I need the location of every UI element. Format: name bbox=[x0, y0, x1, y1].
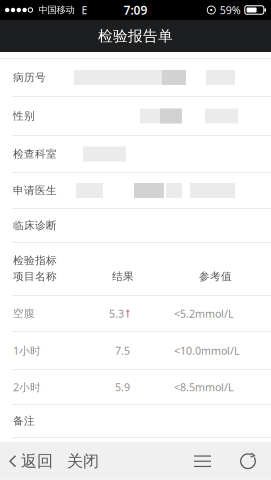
staticText: 项目名称 bbox=[13, 270, 57, 283]
staticText: 空腹 bbox=[13, 307, 35, 320]
button[interactable]: 关闭 bbox=[59, 443, 107, 480]
staticText: 5.9 bbox=[115, 380, 130, 394]
staticText: 申请医生 bbox=[13, 184, 57, 197]
staticText: 参考值 bbox=[199, 270, 232, 283]
staticText: 检验指标 bbox=[13, 254, 57, 267]
staticText: 检查科室 bbox=[13, 147, 57, 160]
staticText: 59% bbox=[220, 3, 241, 17]
staticText: 检验报告单 bbox=[98, 27, 173, 45]
staticText: 5.3 bbox=[109, 306, 124, 321]
staticText: E bbox=[82, 3, 88, 17]
staticText: 病历号 bbox=[13, 71, 46, 84]
staticText: 7.5 bbox=[115, 343, 130, 358]
staticText: 1小时 bbox=[13, 343, 41, 358]
staticText: 中国移动 bbox=[39, 4, 75, 16]
staticText: <5.2mmol/L bbox=[174, 306, 234, 321]
staticText: 返回 bbox=[21, 451, 53, 471]
staticText: 性别 bbox=[13, 109, 35, 122]
staticText: 2小时 bbox=[13, 380, 41, 394]
staticText: 备注 bbox=[13, 414, 35, 427]
button[interactable]: 返回 bbox=[0, 443, 59, 480]
staticText: 关闭 bbox=[67, 451, 99, 471]
staticText: <10.0mmol/L bbox=[174, 343, 240, 358]
staticText: 结果 bbox=[112, 270, 134, 283]
button[interactable]: 菜单 bbox=[180, 443, 225, 480]
button[interactable]: 刷新 bbox=[225, 443, 271, 480]
staticText: 7:09 bbox=[123, 2, 147, 18]
staticText: 临床诊断 bbox=[13, 219, 57, 232]
staticText: <8.5mmol/L bbox=[174, 380, 234, 394]
